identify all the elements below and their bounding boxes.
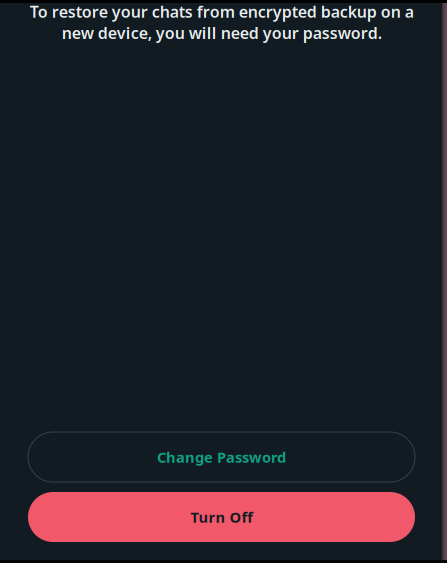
staticText: Change Password xyxy=(157,447,286,467)
button[interactable]: Turn Off xyxy=(28,492,415,542)
button[interactable]: Change Password xyxy=(28,432,415,482)
staticText: Turn Off xyxy=(190,507,252,527)
staticText: To restore your chats from encrypted bac… xyxy=(29,1,413,43)
